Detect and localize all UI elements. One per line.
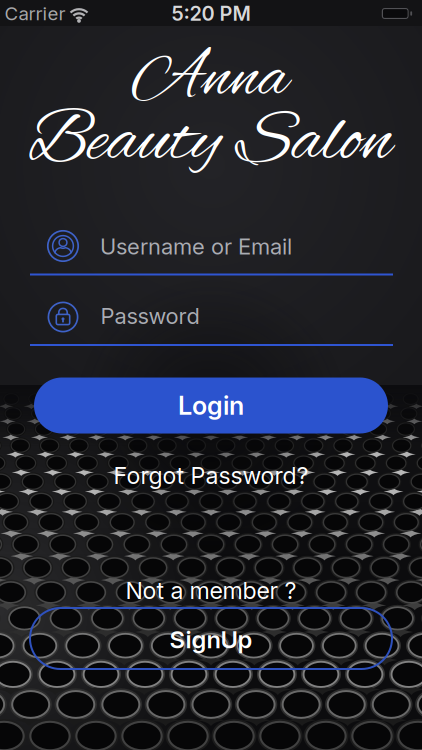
staticText: Forgot Password? (113, 461, 308, 490)
button[interactable]: Login (34, 377, 388, 433)
button[interactable]: Forgot Password? (113, 461, 308, 490)
staticText: 5:20 PM (171, 1, 250, 26)
staticText: Not a member ? (125, 576, 296, 605)
staticText: Carrier (4, 2, 65, 25)
button[interactable]: SignUp (30, 608, 392, 669)
staticText: Password (100, 303, 199, 329)
staticText: Beauty Salon (28, 96, 392, 190)
staticText: SignUp (169, 625, 252, 654)
staticText: Username or Email (100, 233, 292, 260)
staticText: Anna (132, 37, 288, 123)
staticText: Login (178, 390, 244, 421)
